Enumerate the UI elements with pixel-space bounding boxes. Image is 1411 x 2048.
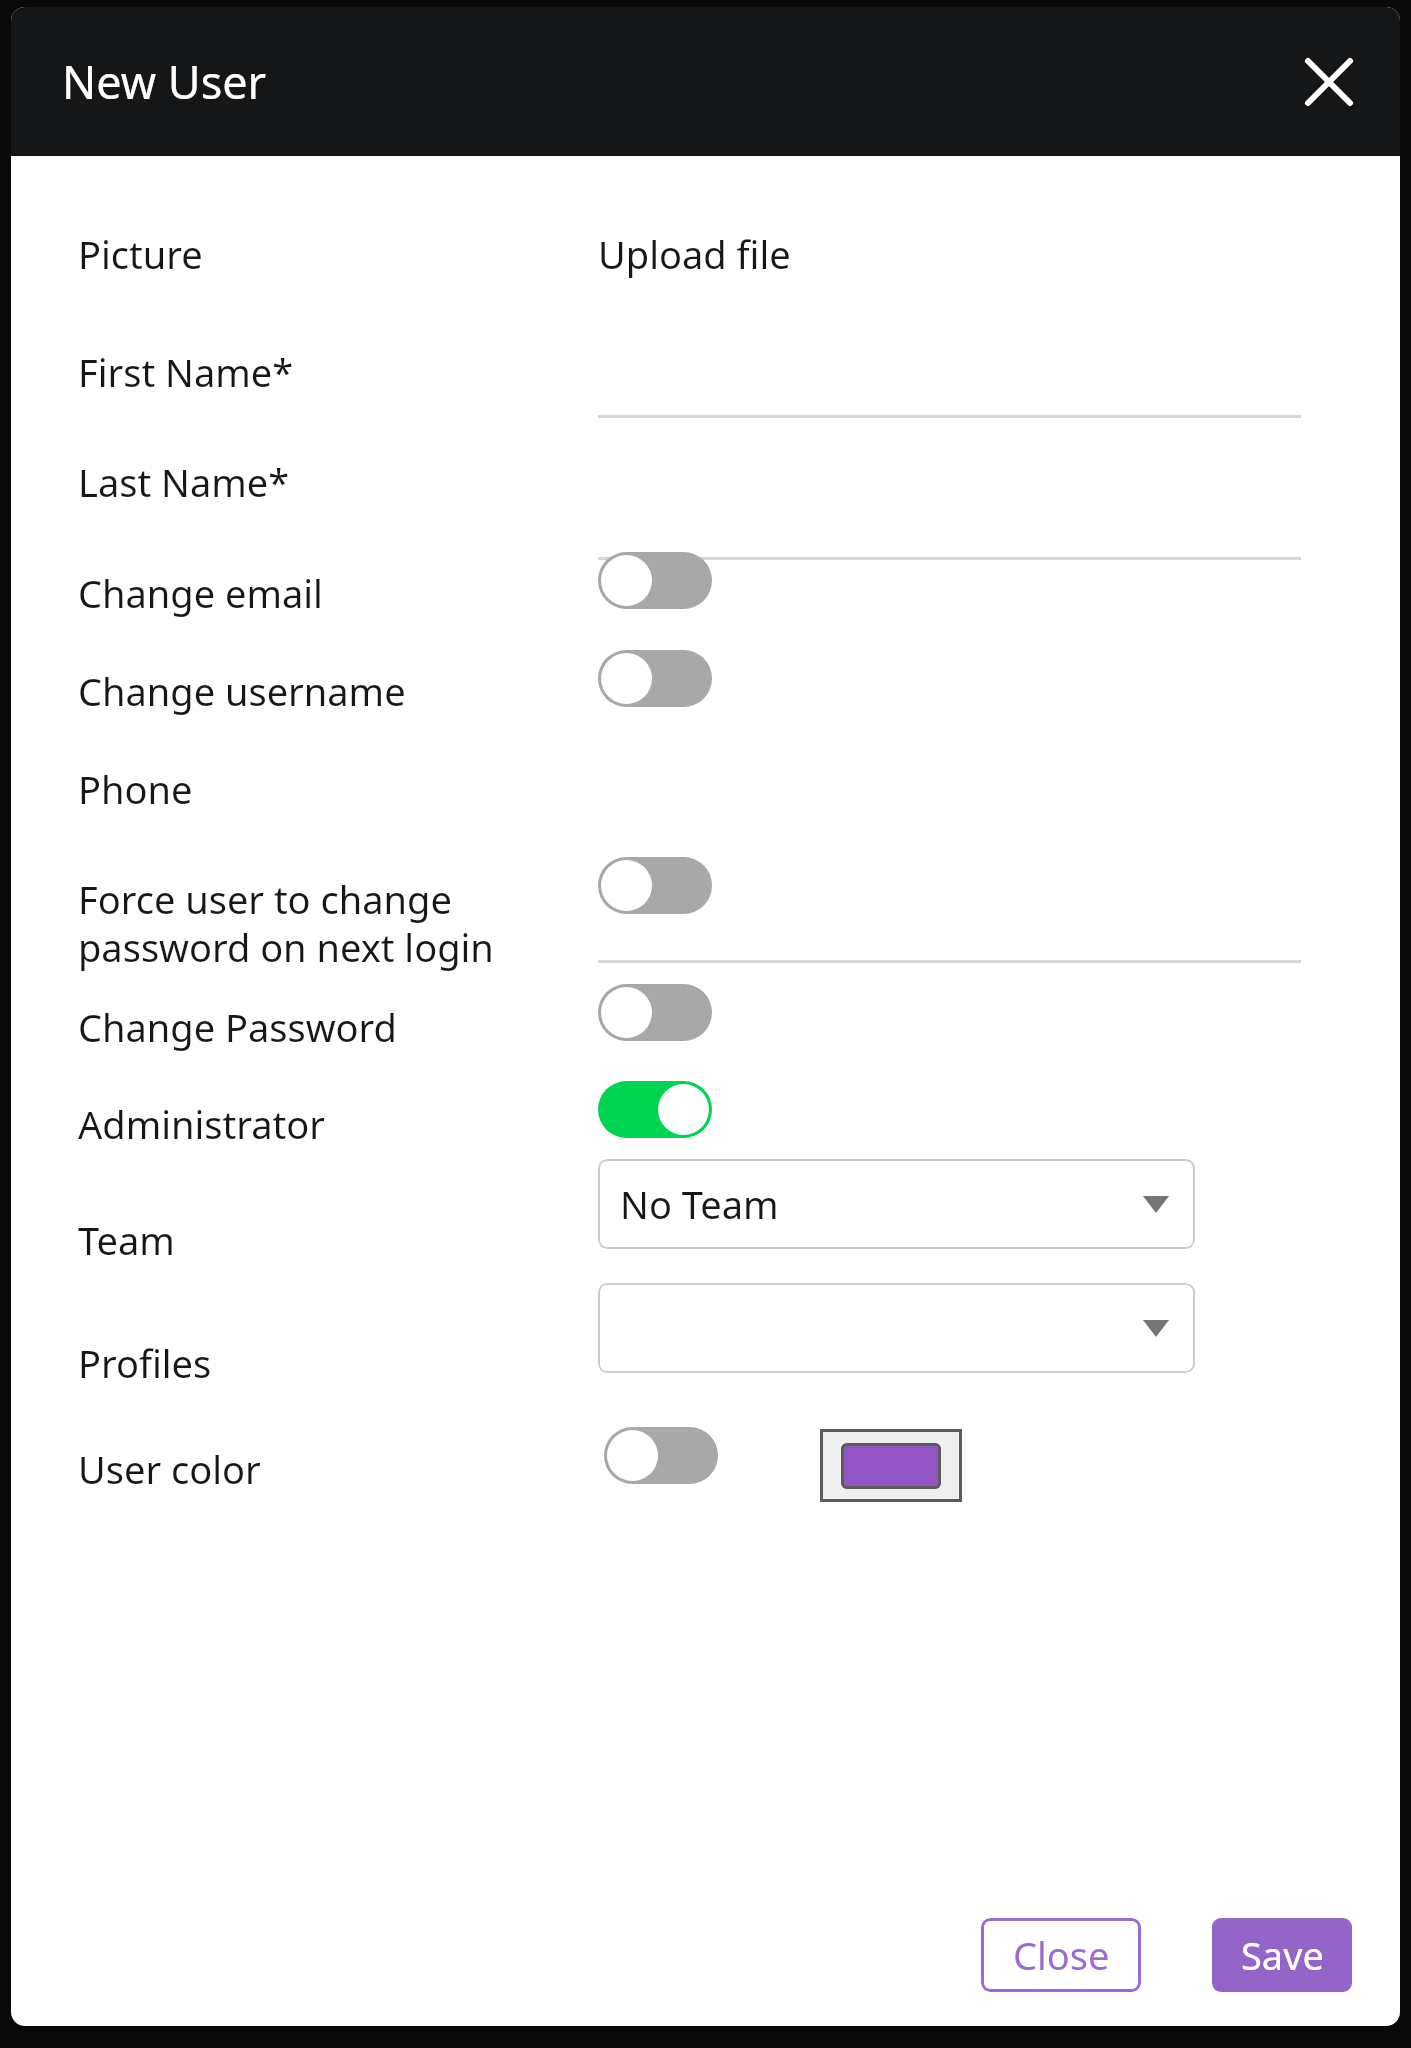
staticText: Phone	[78, 763, 193, 815]
staticText: Force user to change password on next lo…	[78, 873, 578, 974]
staticText: Picture	[78, 228, 203, 280]
staticText: Change email	[78, 567, 323, 619]
button[interactable]: Switch off	[598, 984, 712, 1041]
button[interactable]: Switch off	[598, 552, 712, 609]
staticText: New User	[62, 51, 267, 112]
button[interactable]: Save	[1212, 1918, 1352, 1992]
staticText: Team	[78, 1214, 175, 1266]
button[interactable]: Select profiles	[598, 1283, 1195, 1373]
staticText: Last Name*	[78, 456, 290, 508]
staticText: No Team	[620, 1178, 779, 1230]
staticText: Administrator	[78, 1098, 325, 1150]
button[interactable]	[598, 355, 1301, 418]
button[interactable]: Close	[981, 1918, 1141, 1992]
staticText: Save	[1241, 1929, 1324, 1981]
staticText: Close	[1013, 1929, 1110, 1981]
button[interactable]: Switch on	[598, 1081, 712, 1138]
button[interactable]: Switch off	[598, 857, 712, 914]
staticText: Profiles	[78, 1337, 212, 1389]
button[interactable]	[598, 900, 1301, 963]
button[interactable]: Pick user color	[820, 1429, 962, 1502]
button[interactable]: No Team	[598, 1159, 1195, 1249]
button[interactable]: Switch off	[604, 1427, 718, 1484]
staticText: Change Password	[78, 1001, 397, 1053]
button[interactable]: Close	[1290, 43, 1368, 121]
staticText: First Name*	[78, 346, 294, 398]
button[interactable]: Switch off	[598, 650, 712, 707]
staticText: User color	[78, 1443, 261, 1495]
staticText: Change username	[78, 665, 406, 717]
button[interactable]: Upload file	[598, 228, 791, 280]
button[interactable]	[598, 497, 1301, 560]
